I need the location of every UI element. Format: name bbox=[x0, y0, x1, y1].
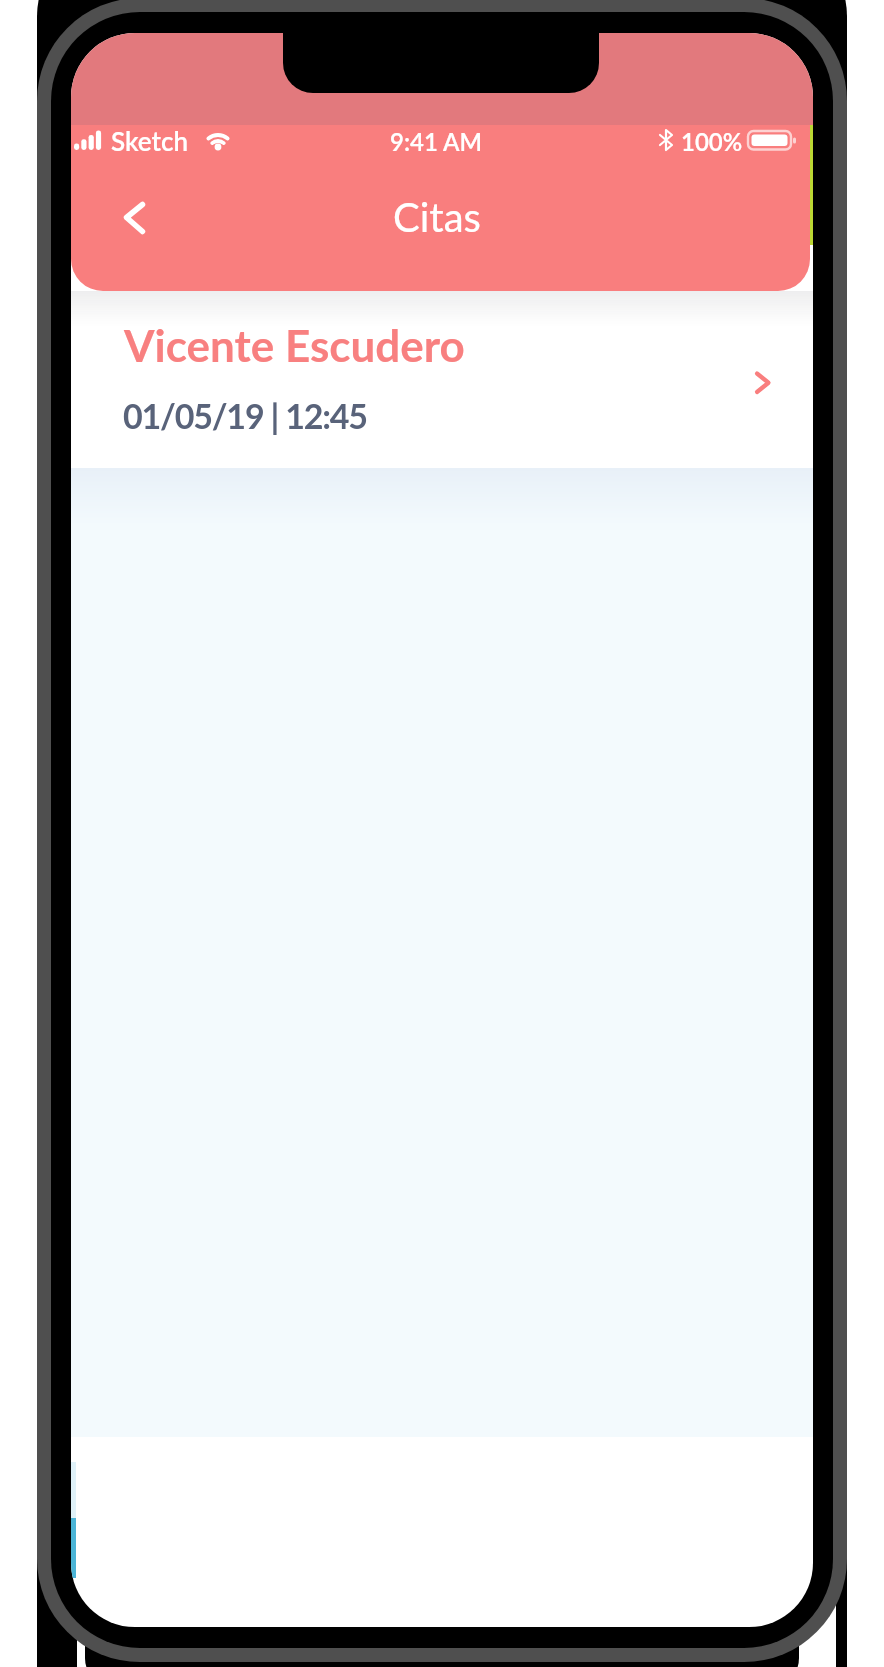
staticText: Sketch bbox=[111, 125, 189, 156]
button[interactable] bbox=[101, 188, 167, 248]
staticText: Vicente Escudero bbox=[124, 319, 465, 372]
staticText: Citas bbox=[393, 193, 481, 241]
staticText: 9:41 AM bbox=[390, 127, 482, 156]
button[interactable]: Vicente Escudero bbox=[71, 291, 813, 462]
staticText: 01/05/19 | 12:45 bbox=[123, 395, 367, 436]
staticText: 100% bbox=[681, 127, 743, 156]
button[interactable] bbox=[71, 1518, 76, 1578]
